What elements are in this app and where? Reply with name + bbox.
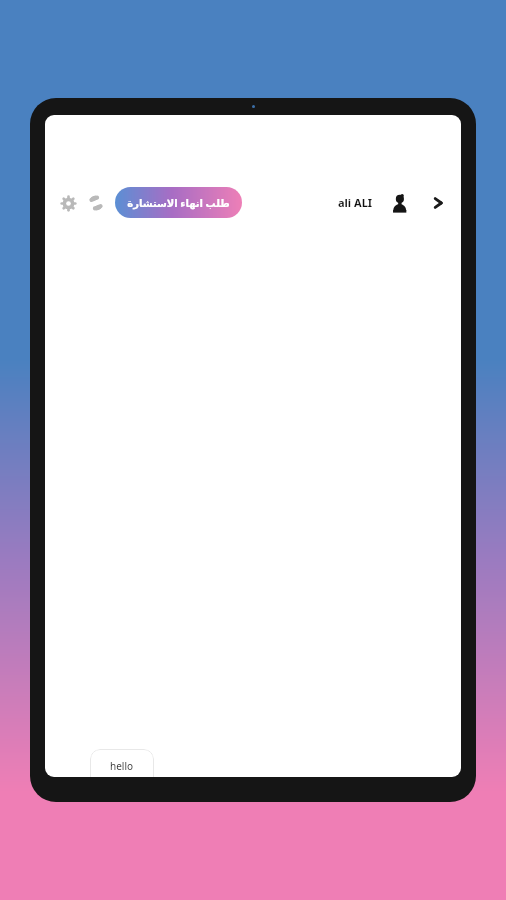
staticText: hello	[110, 759, 134, 773]
button[interactable]: hello	[90, 749, 154, 777]
button[interactable]: Settings	[55, 190, 81, 216]
button[interactable]: Call	[83, 190, 109, 216]
button[interactable]: ali ALI	[338, 195, 373, 210]
button[interactable]: Expand	[425, 190, 451, 216]
button[interactable]: Profile	[385, 189, 413, 217]
button[interactable]: طلب انهاء الاستشارة	[115, 187, 242, 218]
staticText: طلب انهاء الاستشارة	[127, 196, 230, 210]
